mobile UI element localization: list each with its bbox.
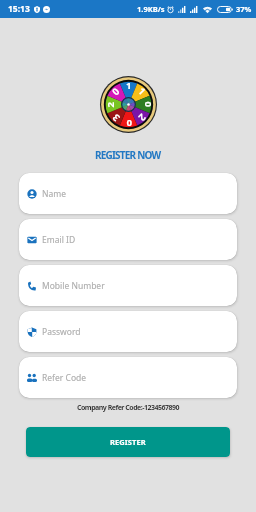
staticText: Email ID	[42, 234, 76, 246]
button[interactable]: Mobile Number	[19, 265, 237, 306]
staticText: 1	[126, 79, 132, 92]
staticText: 2	[103, 101, 116, 107]
staticText: 0	[109, 85, 123, 98]
staticText: Name	[42, 188, 66, 200]
staticText: Refer Code	[42, 372, 87, 384]
staticText: REGISTER	[110, 437, 146, 447]
staticText: 2	[135, 111, 149, 124]
button[interactable]: Email ID	[19, 219, 237, 260]
staticText: 1.9KB/s	[137, 4, 165, 14]
staticText: 15:13	[8, 3, 30, 15]
staticText: REGISTER NOW	[95, 148, 161, 162]
staticText: Password	[42, 326, 81, 338]
staticText: 1	[135, 85, 149, 98]
staticText: 0	[141, 101, 154, 107]
staticText: 3	[109, 111, 123, 124]
button[interactable]: Name	[19, 173, 237, 214]
button[interactable]: Password	[19, 311, 237, 352]
staticText: 37%	[236, 4, 252, 14]
staticText: 0	[126, 117, 132, 130]
button[interactable]: Refer Code	[19, 357, 237, 398]
staticText: Company Refer Code:-1234567890	[77, 403, 180, 413]
staticText: Mobile Number	[42, 280, 105, 292]
button[interactable]: REGISTER	[26, 427, 230, 457]
